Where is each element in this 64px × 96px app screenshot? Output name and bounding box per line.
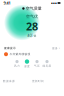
staticText: 今日紫外线较强 [10,53,31,56]
button[interactable]: 能见度 [42,58,52,69]
staticText: 空气优 [26,14,38,19]
staticText: 健康提示 [4,47,16,50]
staticText: 空气质量 [26,6,42,11]
button[interactable]: 气压 [32,58,42,69]
staticText: 湿度 [24,65,30,68]
staticText: ▪▪▪ [51,1,57,4]
button[interactable]: 今日紫外线较强 [0,51,64,58]
button[interactable]: 风力 [12,58,22,69]
staticText: 更新时间 [32,79,44,83]
button[interactable]: 更多 › [52,46,60,50]
staticText: 9:41 [3,0,10,6]
staticText: 能见度 [42,64,51,67]
button[interactable]: 湿度 [22,58,32,69]
staticText: AQI 优 [27,34,36,37]
button[interactable]: 空气质量 [22,6,42,11]
staticText: 28 [26,19,38,33]
staticText: 风力 [14,64,20,67]
staticText: 气压 [34,64,40,67]
staticText: 数据来源 [3,79,15,83]
staticText: 更多 › [52,46,60,50]
